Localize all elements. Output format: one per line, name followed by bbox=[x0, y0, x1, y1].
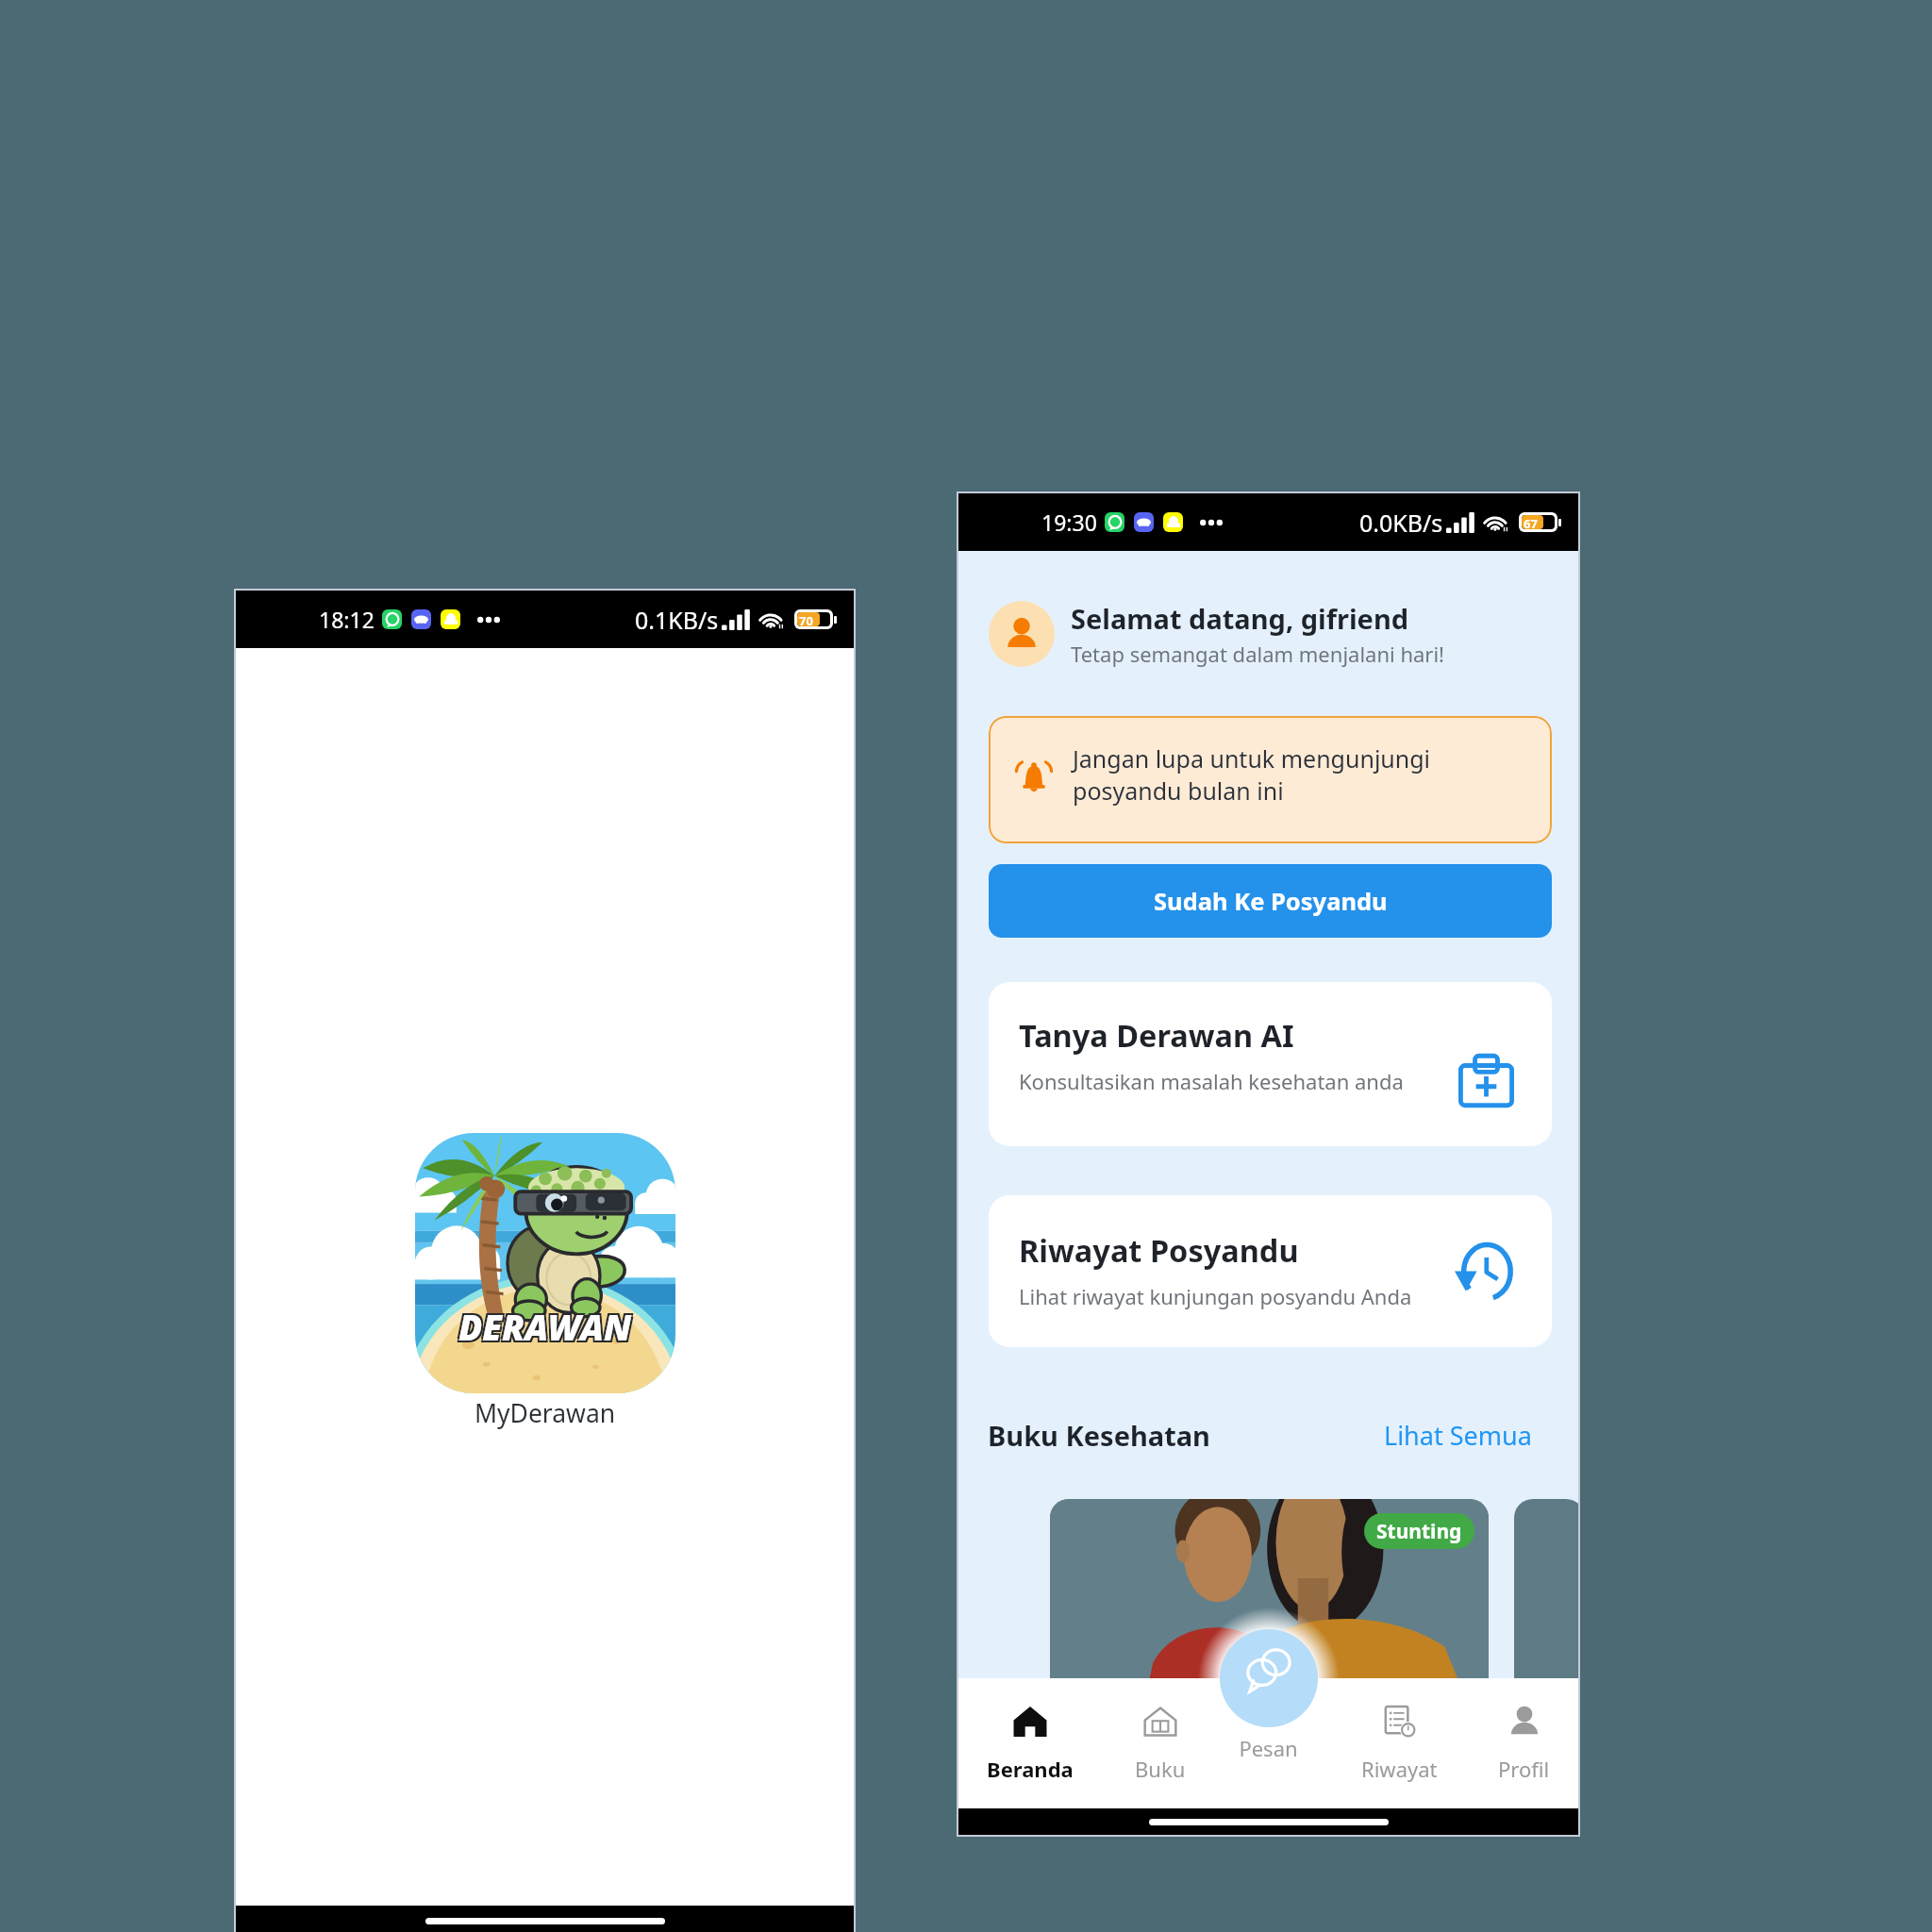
staticText: Riwayat Posyandu bbox=[1019, 1229, 1299, 1271]
staticText: 18:12 bbox=[319, 605, 375, 634]
button[interactable]: Profil pengguna bbox=[989, 601, 1055, 667]
staticText: Tetap semangat dalam menjalani hari! bbox=[1071, 640, 1445, 668]
staticText: 19:30 bbox=[1041, 508, 1097, 537]
staticText: Riwayat bbox=[1361, 1755, 1438, 1783]
staticText: 67 bbox=[1524, 515, 1538, 529]
staticText: Konsultasikan masalah kesehatan anda bbox=[1019, 1067, 1404, 1095]
button[interactable]: Profil bbox=[1498, 1678, 1550, 1808]
button[interactable]: Lihat Semua bbox=[1384, 1418, 1532, 1453]
staticText: Lihat riwayat kunjungan posyandu Anda bbox=[1019, 1282, 1412, 1310]
staticText: Tanya Derawan AI bbox=[1019, 1014, 1294, 1056]
staticText: DERAWAN bbox=[457, 1301, 630, 1348]
button[interactable]: Buku bbox=[1135, 1678, 1186, 1808]
staticText: Lihat Semua bbox=[1384, 1418, 1532, 1453]
staticText: Profil bbox=[1498, 1755, 1550, 1783]
button[interactable]: Profil pengguna bbox=[989, 600, 1445, 668]
button[interactable]: Jangan lupa untuk mengunjungi posyandu b… bbox=[989, 716, 1552, 843]
button[interactable]: Pesan bbox=[1220, 1629, 1318, 1727]
staticText: MyDerawan bbox=[475, 1396, 616, 1430]
staticText: Buku Kesehatan bbox=[988, 1417, 1210, 1454]
button[interactable]: Sudah Ke Posyandu bbox=[989, 864, 1552, 938]
staticText: Sudah Ke Posyandu bbox=[1154, 885, 1388, 918]
staticText: Jangan lupa untuk mengunjungi posyandu b… bbox=[1073, 742, 1533, 808]
staticText: Buku bbox=[1135, 1755, 1186, 1783]
staticText: Pesan bbox=[1239, 1734, 1292, 1762]
staticText: DERAWAN bbox=[458, 1303, 632, 1350]
staticText: Selamat datang, gifriend bbox=[1071, 600, 1409, 637]
button[interactable]: Riwayat Posyandu bbox=[989, 1195, 1552, 1347]
staticText: Beranda bbox=[987, 1755, 1074, 1783]
staticText: 0.0KB/s bbox=[1359, 507, 1443, 539]
staticText: Stunting bbox=[1376, 1518, 1462, 1545]
staticText: 70 bbox=[799, 612, 813, 626]
button[interactable]: Stunting bbox=[1050, 1499, 1489, 1763]
staticText: 0.1KB/s bbox=[635, 604, 719, 636]
button[interactable]: Artikel kesehatan berikutnya bbox=[1514, 1499, 1578, 1763]
button[interactable]: Tanya Derawan AI bbox=[989, 982, 1552, 1146]
staticText: DERAWAN bbox=[457, 1305, 630, 1352]
staticText: DERAWAN bbox=[460, 1305, 634, 1352]
button[interactable]: Beranda bbox=[987, 1678, 1074, 1808]
staticText: DERAWAN bbox=[460, 1301, 634, 1348]
button[interactable]: Riwayat bbox=[1361, 1678, 1438, 1808]
